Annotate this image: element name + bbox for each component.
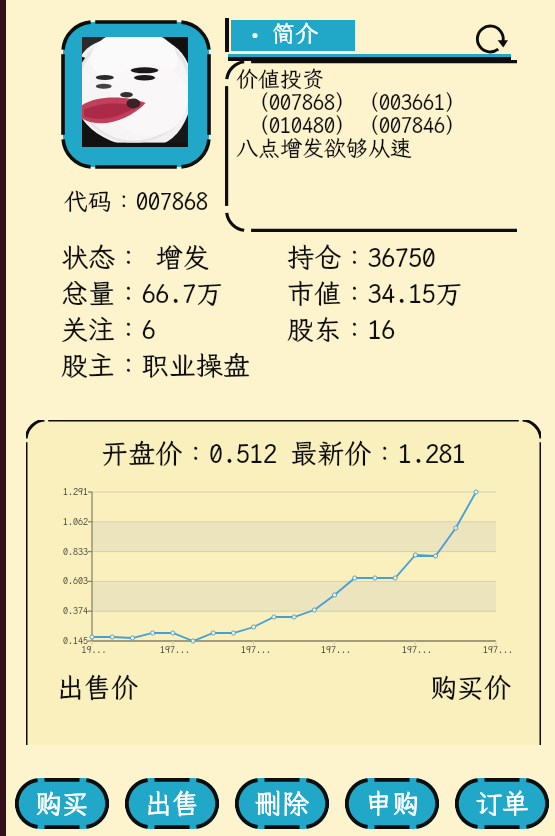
staticText: 197... (316, 644, 356, 656)
staticText: 购买 (35, 788, 89, 820)
staticText: 开盘价：0.512 最新价：1.281 (26, 438, 541, 470)
staticText: 股东：16 (287, 314, 395, 346)
staticText: 购买价 (430, 672, 511, 704)
button[interactable]: 订单 (455, 778, 549, 829)
staticText: 出售 (145, 788, 199, 820)
staticText: 19... (74, 644, 114, 656)
staticText: 197... (236, 644, 276, 656)
button[interactable]: 出售 (125, 778, 219, 829)
staticText: （007868）（003661） (236, 90, 468, 116)
button[interactable]: 申购 (345, 778, 439, 829)
button[interactable]: 简介 (231, 20, 355, 51)
staticText: 197... (155, 644, 195, 656)
staticText: 0.603 (28, 575, 88, 587)
button[interactable]: 删除 (235, 778, 329, 829)
button[interactable]: 购买 (15, 778, 109, 829)
staticText: 状态： 增发 (61, 242, 210, 274)
staticText: 价值投资 (236, 67, 325, 93)
staticText: 关注：6 (61, 314, 156, 346)
staticText: 总量：66.7万 (61, 278, 223, 310)
staticText: 0.833 (28, 546, 88, 558)
staticText: 订单 (475, 788, 529, 820)
staticText: 0.374 (28, 605, 88, 617)
staticText: 删除 (255, 788, 309, 820)
staticText: 1.291 (28, 486, 88, 498)
staticText: 代码：007868 (56, 188, 216, 216)
staticText: （010480）（007846） (236, 113, 468, 139)
staticText: 简介 (272, 21, 318, 48)
staticText: 0.145 (28, 635, 88, 647)
staticText: 申购 (365, 788, 419, 820)
staticText: 出售价 (57, 672, 138, 704)
staticText: 股主：职业操盘 (61, 350, 250, 382)
staticText: 八点增发欲够从速 (236, 136, 413, 162)
button[interactable]: Refresh (467, 14, 517, 64)
staticText: 197... (478, 644, 518, 656)
staticText: 1.062 (28, 516, 88, 528)
staticText: 市值：34.15万 (287, 278, 463, 310)
staticText: 持仓：36750 (287, 242, 436, 274)
staticText: 197... (397, 644, 437, 656)
